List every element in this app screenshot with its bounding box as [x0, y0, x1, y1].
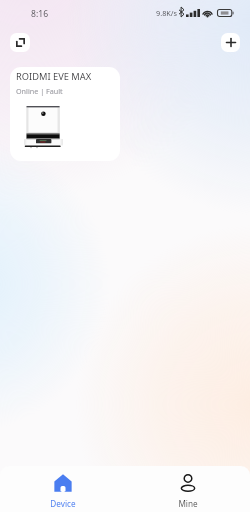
staticText: Online | Fault: [16, 86, 63, 96]
button[interactable]: Mine: [125, 466, 250, 512]
button[interactable]: Add device: [221, 33, 240, 52]
staticText: Mine: [178, 498, 198, 509]
staticText: 9.8K/s: [156, 8, 178, 18]
button[interactable]: Expand: [10, 33, 30, 52]
staticText: Device: [50, 498, 76, 509]
button[interactable]: Device: [0, 466, 125, 512]
staticText: ROIDMI EVE MAX: [16, 70, 92, 83]
staticText: 8:16: [31, 8, 49, 20]
button[interactable]: ROIDMI EVE MAX: [10, 67, 120, 161]
